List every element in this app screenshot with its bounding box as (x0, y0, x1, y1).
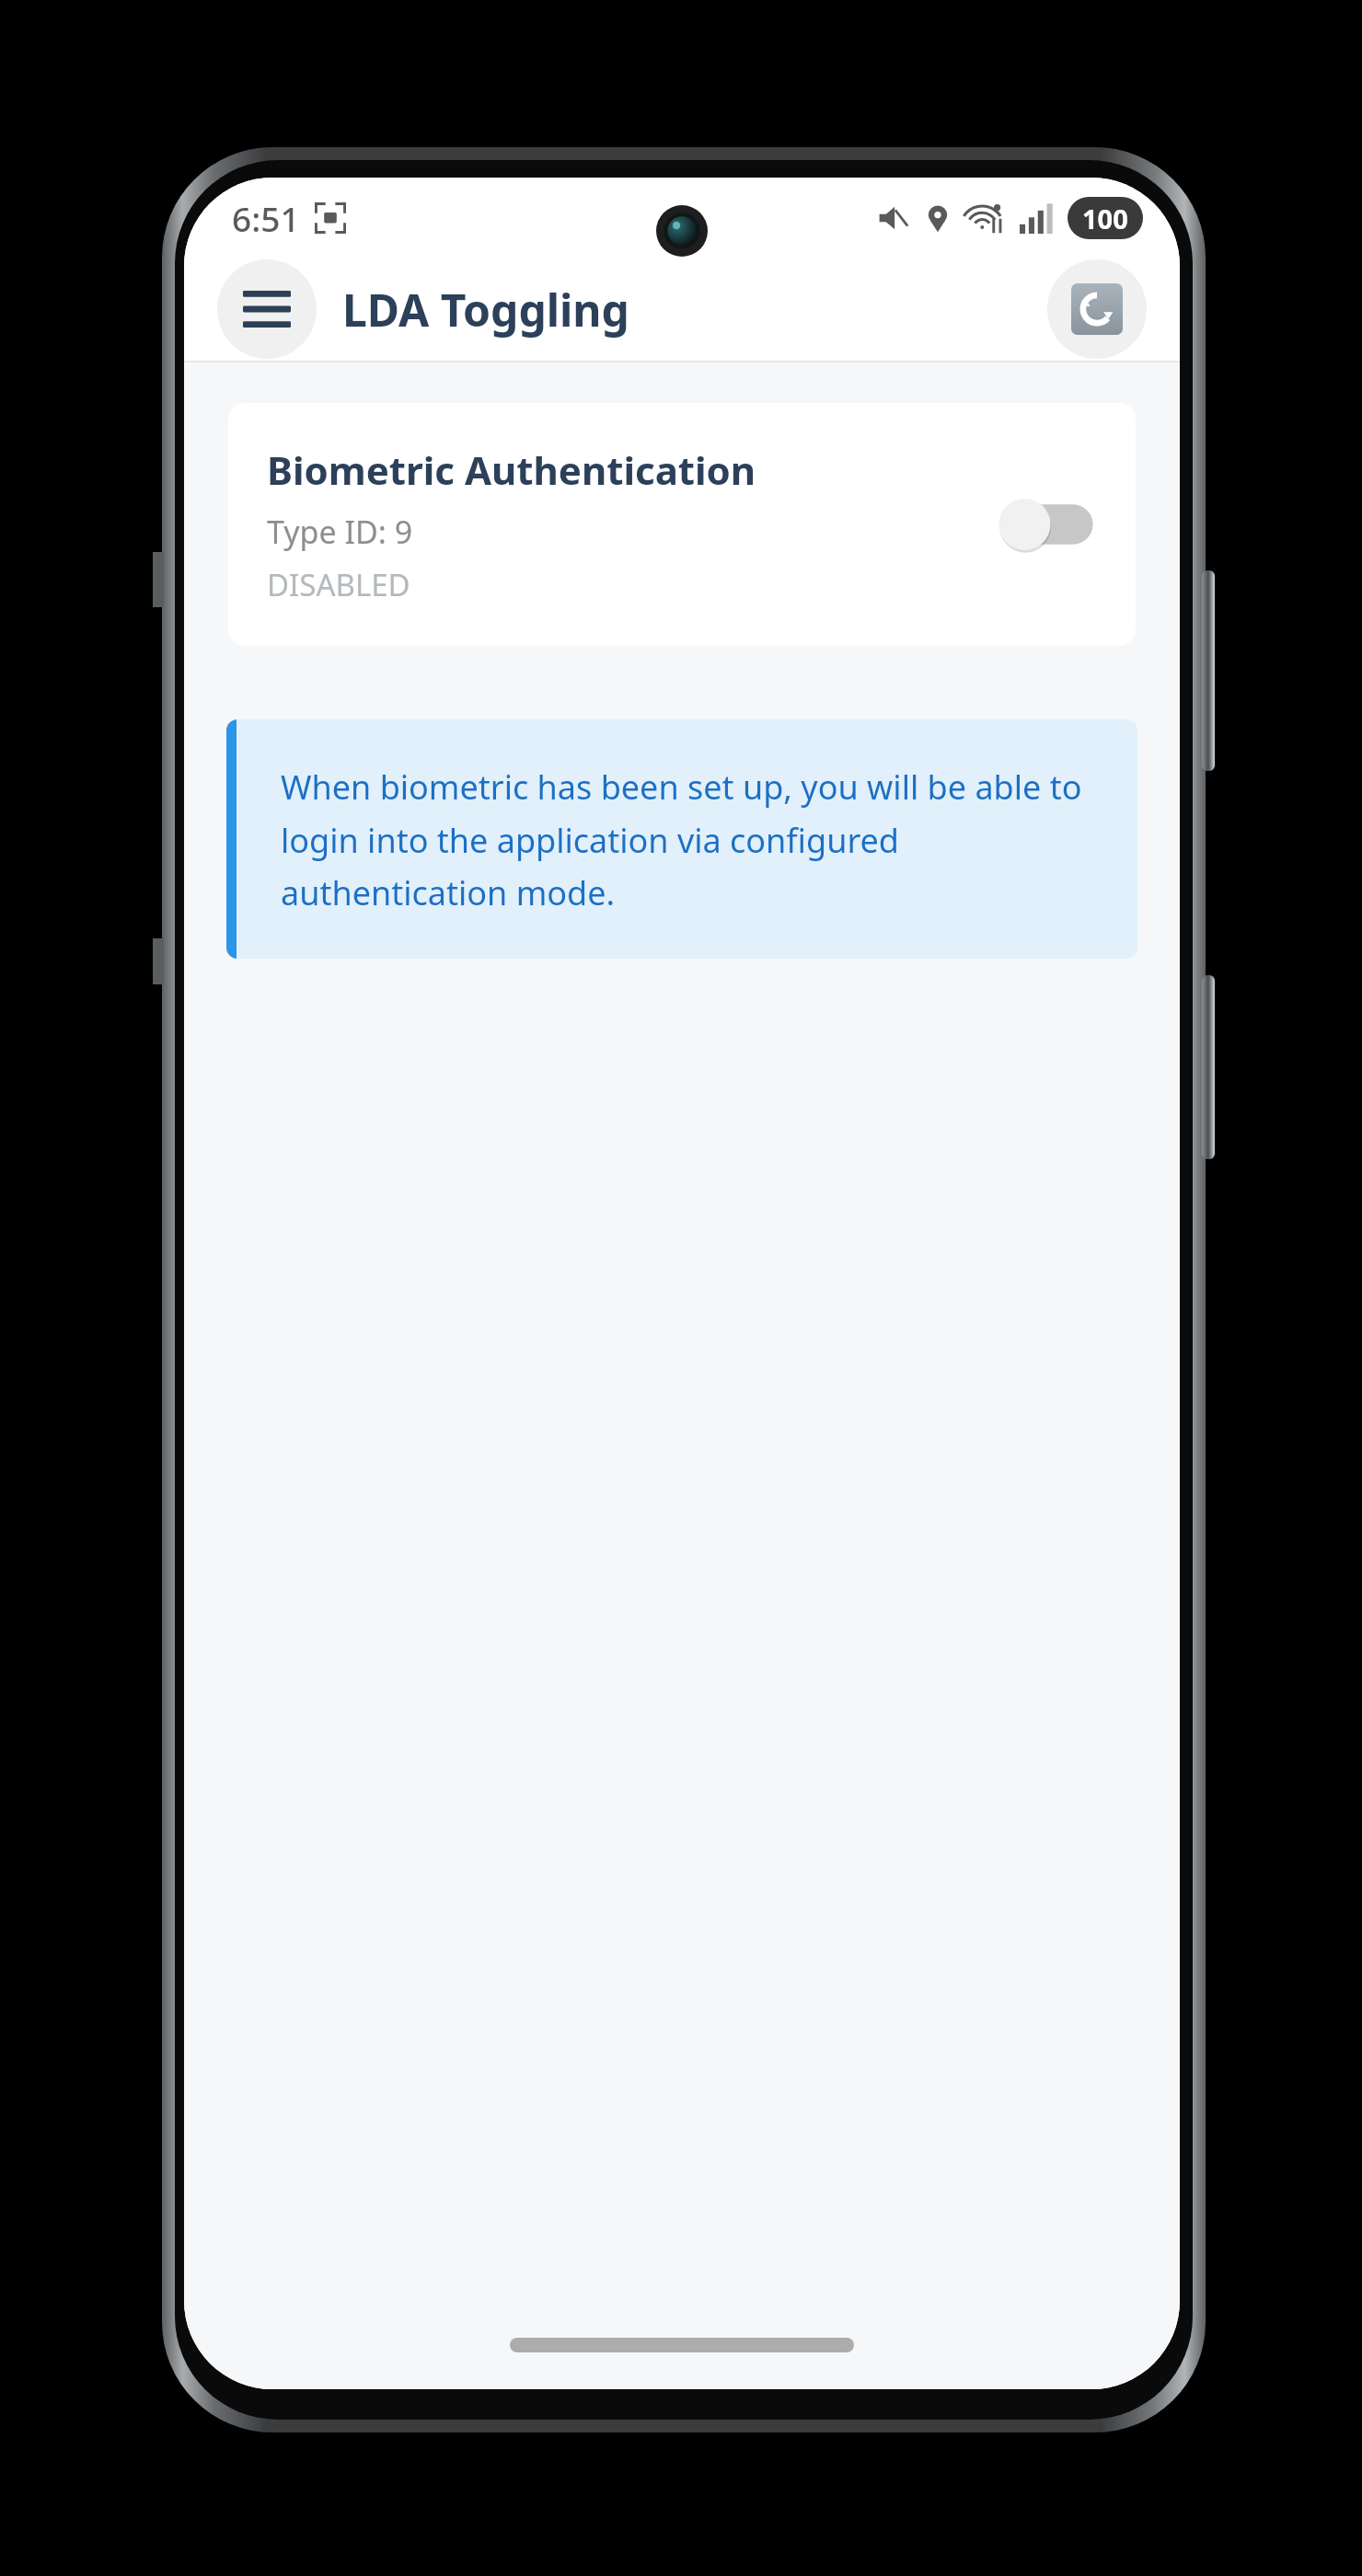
button[interactable] (996, 492, 1097, 557)
button[interactable]: Biometric Authentication (228, 403, 1136, 646)
button[interactable]: Refresh (1047, 259, 1147, 359)
staticText: Biometric Authentication (267, 443, 756, 496)
staticText: LDA Toggling (342, 280, 629, 339)
staticText: DISABLED (267, 564, 410, 605)
staticText: 6:51 (232, 195, 300, 241)
staticText: 100 (1082, 201, 1128, 236)
button[interactable]: When biometric has been set up, you will… (226, 719, 1137, 959)
button[interactable]: Open navigation menu (217, 259, 317, 359)
staticText: When biometric has been set up, you will… (281, 765, 1106, 914)
staticText: Type ID: 9 (267, 511, 413, 553)
